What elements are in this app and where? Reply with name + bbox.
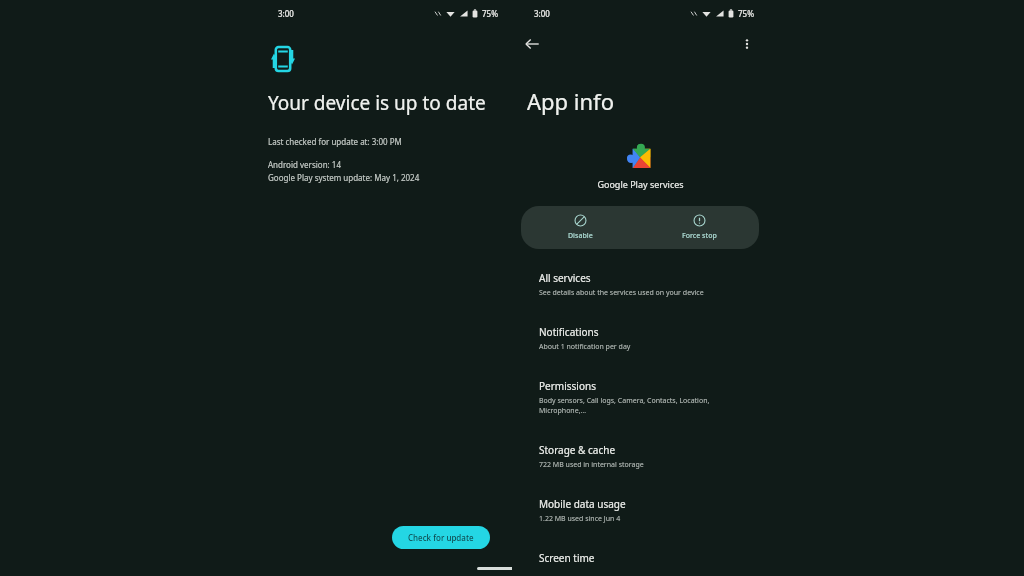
staticText: Storage & cache <box>539 443 616 457</box>
staticText: Disable <box>568 231 593 241</box>
staticText: 3:00 <box>534 8 550 19</box>
button[interactable]: Check for update <box>392 526 490 549</box>
button[interactable]: Force stop <box>640 206 759 249</box>
button[interactable]: Notifications <box>512 317 768 360</box>
button[interactable]: Storage & cache <box>512 435 768 478</box>
staticText: Google Play services <box>597 178 684 190</box>
other: System update <box>268 44 298 74</box>
button[interactable]: Disable <box>521 206 640 249</box>
button[interactable]: Mobile data usage <box>512 489 768 532</box>
button[interactable]: More options <box>740 37 754 51</box>
staticText: 1.22 MB used since Jun 4 <box>539 514 621 524</box>
button[interactable]: Back <box>524 36 540 52</box>
staticText: 722 MB used in internal storage <box>539 460 644 470</box>
staticText: About 1 notification per day <box>539 342 631 352</box>
button[interactable]: Permissions <box>512 371 768 424</box>
staticText: Check for update <box>408 532 474 543</box>
staticText: Last checked for update at: 3:00 PM <box>268 136 402 147</box>
staticText: Google Play system update: May 1, 2024 <box>268 172 420 183</box>
staticText: Body sensors, Call logs, Camera, Contact… <box>539 396 752 416</box>
staticText: See details about the services used on y… <box>539 288 704 298</box>
staticText: Mobile data usage <box>539 497 626 511</box>
staticText: 75% <box>738 8 754 19</box>
staticText: App info <box>527 86 614 116</box>
staticText: Android version: 14 <box>268 159 341 170</box>
staticText: Screen time <box>539 551 595 565</box>
staticText: Force stop <box>682 231 717 241</box>
staticText: 75% <box>482 8 498 19</box>
button[interactable]: Screen time <box>512 543 768 576</box>
staticText: Notifications <box>539 325 599 339</box>
staticText: 3:00 <box>278 8 294 19</box>
staticText: Your device is up to date <box>268 90 486 116</box>
staticText: All services <box>539 271 591 285</box>
button[interactable]: All services <box>512 263 768 306</box>
staticText: Permissions <box>539 379 596 393</box>
